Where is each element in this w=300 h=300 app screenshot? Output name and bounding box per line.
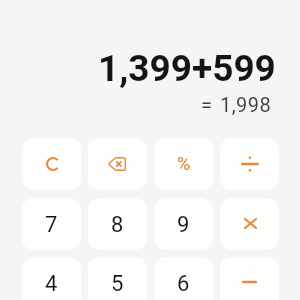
button[interactable]: 7: [22, 198, 81, 250]
staticText: 7: [45, 212, 58, 238]
button[interactable]: 4: [22, 257, 81, 300]
staticText: 8: [111, 212, 124, 238]
button[interactable]: 5: [88, 257, 147, 300]
button[interactable]: Minus: [220, 257, 279, 300]
button[interactable]: Backspace: [88, 138, 147, 190]
button[interactable]: 9: [154, 198, 213, 250]
button[interactable]: Multiply: [220, 198, 279, 250]
button[interactable]: Percent: [154, 138, 213, 190]
staticText: 5: [111, 271, 124, 297]
button[interactable]: Divide: [220, 138, 279, 190]
staticText: 6: [177, 271, 190, 297]
button[interactable]: Clear: [22, 138, 81, 190]
staticText: =: [201, 93, 212, 116]
staticText: 4: [45, 271, 58, 297]
staticText: %: [177, 153, 191, 174]
staticText: 1,399+599: [98, 47, 276, 90]
staticText: 9: [177, 212, 190, 238]
button[interactable]: 8: [88, 198, 147, 250]
staticText: 1,998: [220, 93, 272, 116]
button[interactable]: 6: [154, 257, 213, 300]
